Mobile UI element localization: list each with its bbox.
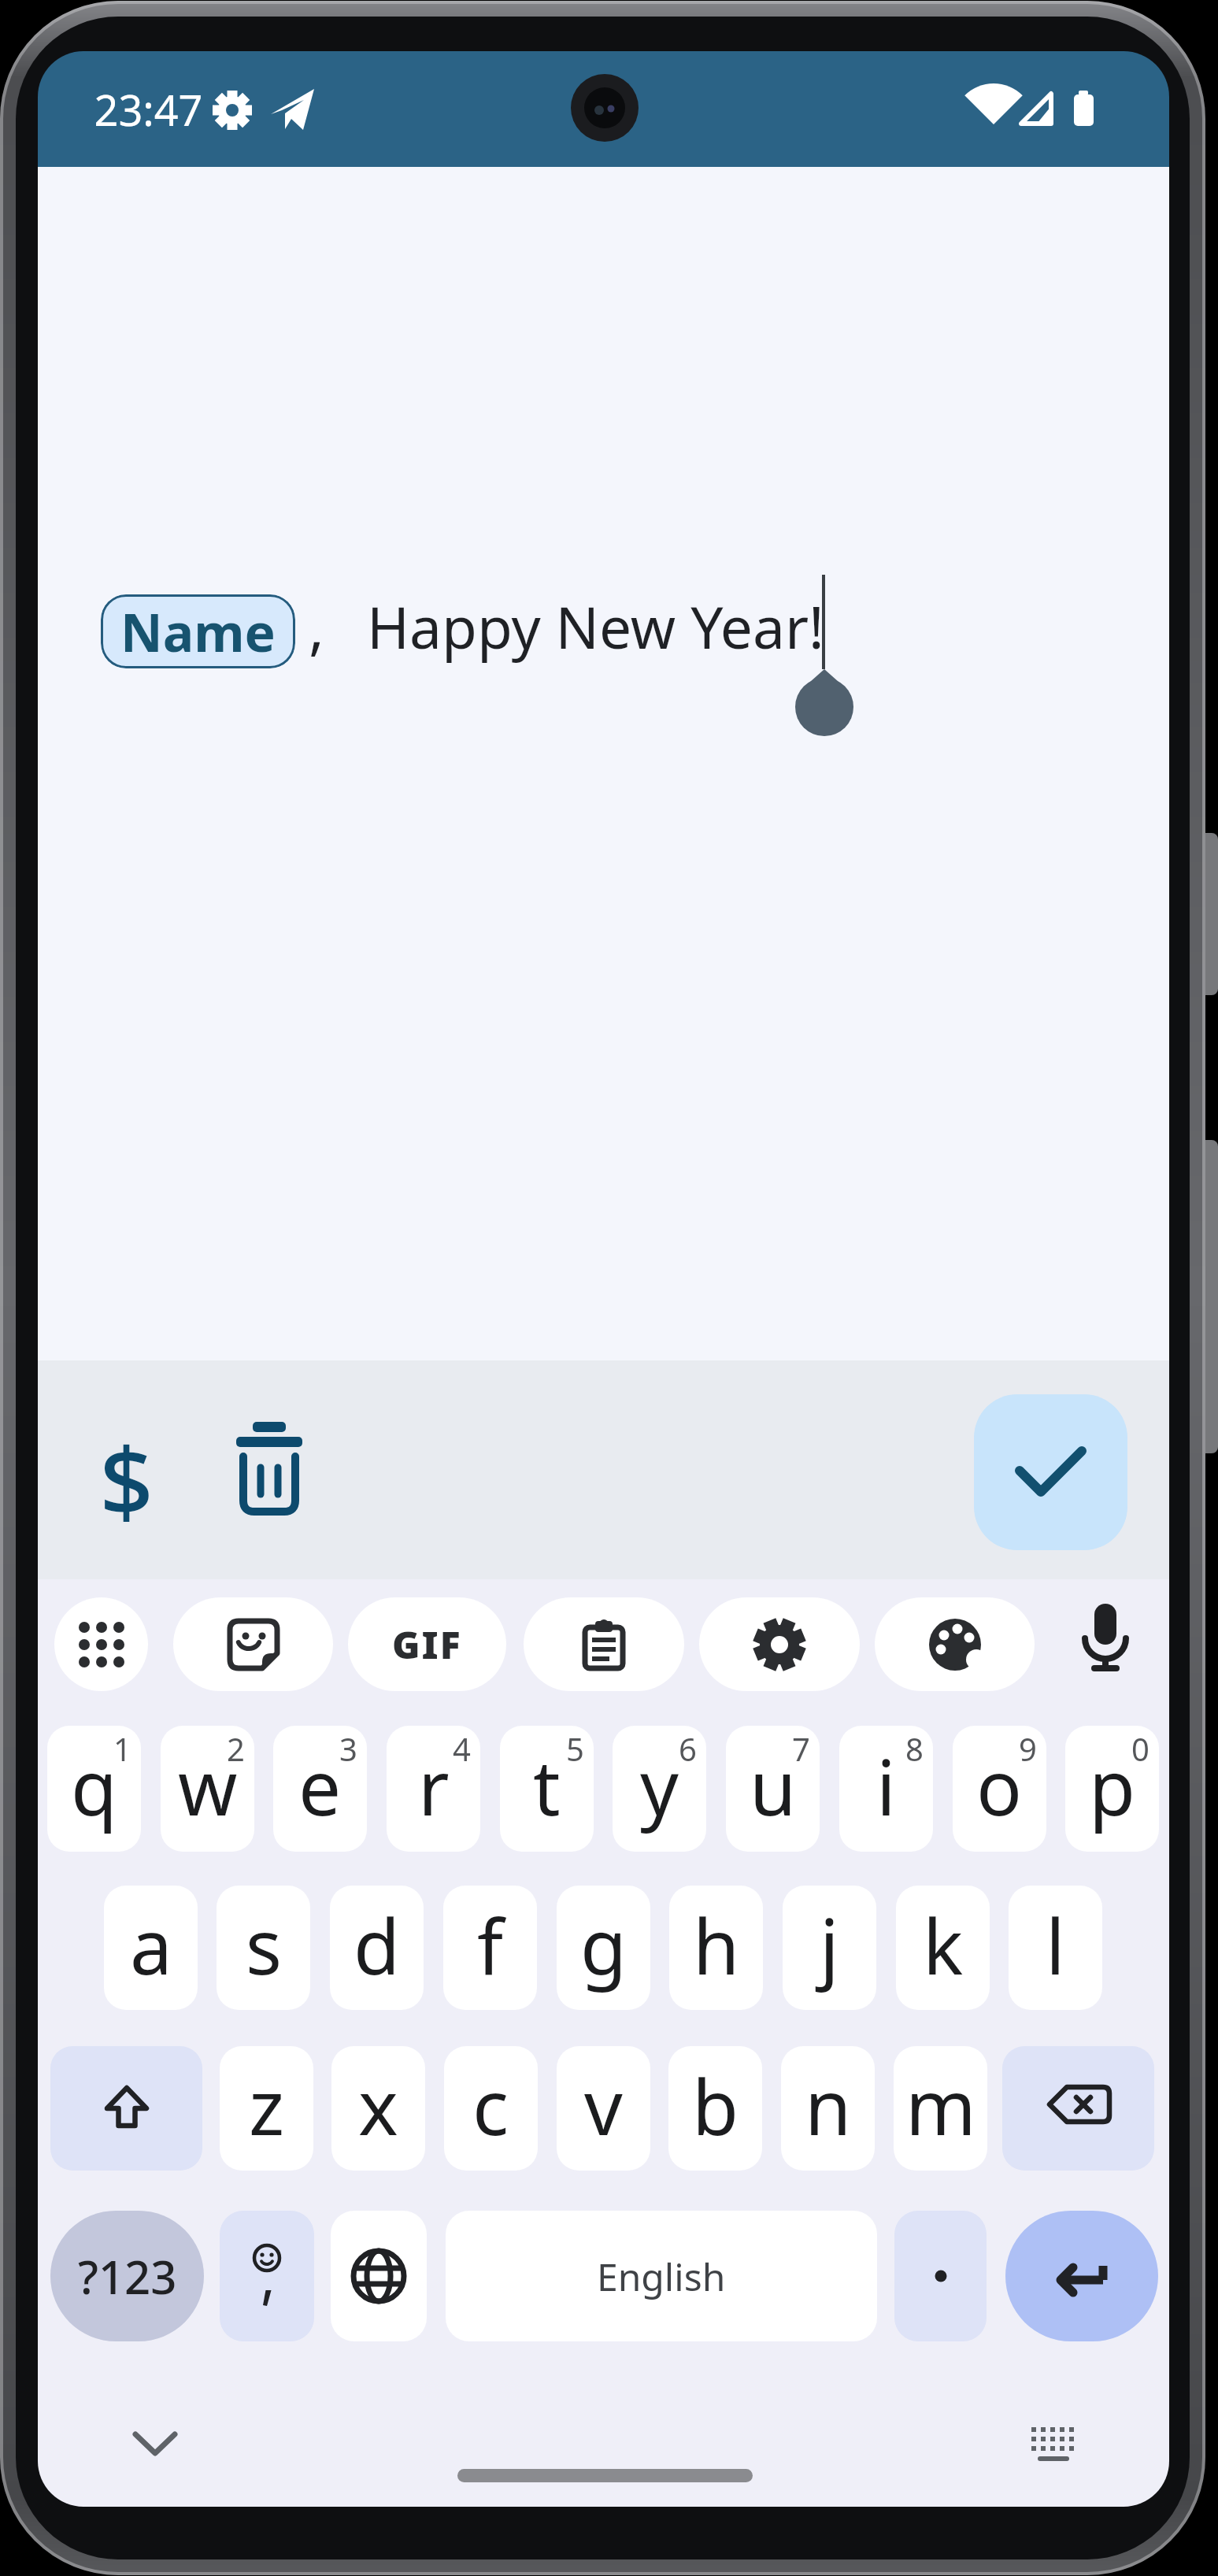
staticText: ,	[309, 587, 324, 666]
button[interactable]: h	[669, 1886, 763, 2010]
staticText: p	[1089, 1734, 1136, 1838]
button[interactable]: o	[953, 1726, 1046, 1852]
button[interactable]	[331, 2211, 427, 2341]
staticText: y	[640, 1734, 679, 1838]
staticText: r	[418, 1734, 450, 1838]
button[interactable]: w	[161, 1726, 254, 1852]
staticText: a	[130, 1893, 172, 1997]
button[interactable]: b	[668, 2046, 762, 2171]
button[interactable]: d	[330, 1886, 424, 2010]
staticText: Name	[120, 596, 276, 667]
staticText: h	[693, 1893, 740, 1997]
button[interactable]: e	[273, 1726, 367, 1852]
staticText: 6	[679, 1727, 697, 1770]
staticText: 8	[905, 1727, 924, 1770]
button[interactable]	[1022, 2412, 1085, 2475]
button[interactable]	[220, 2211, 314, 2341]
staticText: GIF	[392, 1619, 462, 1670]
staticText: t	[533, 1734, 561, 1838]
button[interactable]	[699, 1597, 860, 1691]
button[interactable]	[974, 1394, 1127, 1550]
button[interactable]: Name	[101, 594, 295, 668]
button[interactable]: n	[781, 2046, 875, 2171]
staticText: 4	[453, 1727, 471, 1770]
button[interactable]	[1005, 2211, 1158, 2341]
button[interactable]	[124, 2412, 187, 2475]
button[interactable]	[1002, 2046, 1154, 2171]
staticText: 7	[792, 1727, 810, 1770]
staticText: b	[692, 2054, 739, 2157]
staticText: j	[820, 1893, 839, 1997]
staticText: l	[1046, 1893, 1065, 1997]
staticText: 3	[339, 1727, 357, 1770]
button[interactable]: GIF	[348, 1597, 506, 1691]
button[interactable]: u	[726, 1726, 820, 1852]
staticText: x	[358, 2054, 398, 2157]
staticText: $	[99, 1416, 154, 1526]
button[interactable]: s	[217, 1886, 310, 2010]
staticText: i	[876, 1734, 896, 1838]
button[interactable]	[233, 1416, 305, 1523]
button[interactable]: q	[47, 1726, 141, 1852]
staticText: 23:47	[94, 80, 203, 139]
button[interactable]: m	[894, 2046, 987, 2171]
staticText: 0	[1131, 1727, 1150, 1770]
staticText: c	[472, 2054, 509, 2157]
button[interactable]: k	[896, 1886, 990, 2010]
staticText: g	[580, 1893, 628, 1997]
staticText: e	[298, 1734, 342, 1838]
staticText: u	[750, 1734, 797, 1838]
button[interactable]	[894, 2211, 987, 2341]
button[interactable]: j	[783, 1886, 876, 2010]
staticText: f	[477, 1893, 504, 1997]
button[interactable]: v	[557, 2046, 650, 2171]
button[interactable]: g	[557, 1886, 650, 2010]
button[interactable]: z	[220, 2046, 313, 2171]
staticText: n	[805, 2054, 852, 2157]
button[interactable]: x	[331, 2046, 425, 2171]
staticText: d	[354, 1893, 401, 1997]
button[interactable]: c	[444, 2046, 538, 2171]
button[interactable]: t	[500, 1726, 594, 1852]
button[interactable]: r	[387, 1726, 480, 1852]
button[interactable]: f	[443, 1886, 537, 2010]
button[interactable]	[54, 1597, 148, 1691]
staticText: v	[584, 2054, 623, 2157]
staticText: q	[71, 1734, 118, 1838]
staticText: 9	[1019, 1727, 1037, 1770]
button[interactable]	[875, 1597, 1035, 1691]
button[interactable]: i	[839, 1726, 933, 1852]
staticText: 5	[566, 1727, 584, 1770]
staticText: o	[976, 1734, 1023, 1838]
staticText: 2	[227, 1727, 245, 1770]
button[interactable]	[524, 1597, 684, 1691]
button[interactable]: y	[613, 1726, 706, 1852]
button[interactable]: ?123	[50, 2211, 204, 2341]
button[interactable]	[1068, 1597, 1143, 1691]
button[interactable]: $	[87, 1416, 165, 1526]
staticText: English	[597, 2251, 726, 2302]
button[interactable]: l	[1009, 1886, 1102, 2010]
button[interactable]	[173, 1597, 333, 1691]
button[interactable]: p	[1065, 1726, 1159, 1852]
staticText: 1	[113, 1727, 131, 1770]
staticText: s	[246, 1893, 282, 1997]
button[interactable]	[50, 2046, 202, 2171]
staticText: ?123	[78, 2245, 177, 2308]
staticText: w	[178, 1734, 238, 1838]
staticText: Happy New Year!	[367, 587, 824, 665]
staticText: z	[249, 2054, 285, 2157]
staticText: m	[905, 2054, 976, 2157]
button[interactable]: a	[104, 1886, 198, 2010]
staticText: k	[923, 1893, 964, 1997]
button[interactable]: English	[446, 2211, 877, 2341]
